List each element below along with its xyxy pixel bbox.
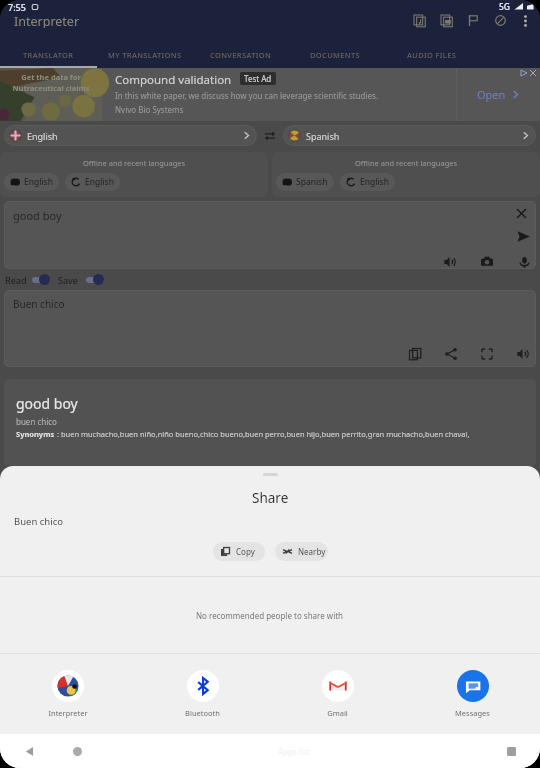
staticText: English: [360, 176, 389, 188]
staticText: Nearby: [298, 546, 326, 557]
button[interactable]: English: [340, 173, 395, 191]
staticText: Spanish: [306, 130, 340, 142]
button[interactable]: Camera: [477, 252, 497, 269]
staticText: 5G: [499, 1, 511, 13]
button[interactable]: DOCUMENTS: [288, 41, 382, 68]
staticText: No recommended people to share with: [196, 610, 344, 621]
button[interactable]: Copy: [213, 542, 265, 561]
staticText: Synonyms: [16, 429, 55, 439]
staticText: CONVERSATION: [210, 50, 272, 60]
staticText: Open: [477, 87, 506, 102]
button[interactable]: Open: [457, 68, 540, 121]
staticText: Bluetooth: [185, 708, 220, 718]
button[interactable]: Flag: [460, 13, 487, 28]
button[interactable]: Microphone: [514, 252, 534, 269]
button[interactable]: Listen: [513, 344, 533, 364]
staticText: Messages: [455, 708, 490, 718]
staticText: Get the data for Nutraceutical claims: [12, 72, 90, 93]
button[interactable]: Interpreter: [0, 670, 135, 718]
staticText: Share: [252, 489, 289, 507]
button[interactable]: Gmail: [270, 670, 405, 718]
staticText: Buen chico: [13, 297, 65, 311]
staticText: MY TRANSLATIONS: [108, 50, 182, 60]
staticText: Interpreter: [14, 13, 80, 28]
staticText: AUDIO FILES: [407, 50, 457, 60]
staticText: Compound validation: [115, 72, 232, 88]
button[interactable]: English: [4, 173, 59, 191]
button[interactable]: English: [4, 125, 257, 146]
staticText: buen chico: [16, 416, 57, 427]
staticText: English: [24, 176, 53, 188]
button[interactable]: Spanish: [283, 125, 536, 146]
staticText: good boy: [13, 208, 62, 223]
button[interactable]: MY TRANSLATIONS: [97, 41, 193, 68]
staticText: Apps list: [278, 746, 310, 757]
staticText: Copy: [236, 546, 255, 557]
button[interactable]: Send: [514, 227, 532, 245]
button[interactable]: More options: [514, 13, 536, 28]
button[interactable]: CONVERSATION: [193, 41, 288, 68]
button[interactable]: Fullscreen: [477, 344, 497, 364]
button[interactable]: Copy: [405, 344, 425, 364]
button[interactable]: Bluetooth: [135, 670, 270, 718]
button[interactable]: Recent apps: [498, 738, 524, 764]
staticText: Offline and recent languages: [83, 158, 186, 168]
staticText: Spanish: [296, 176, 328, 188]
staticText: Gmail: [327, 708, 348, 718]
staticText: Buen chico: [14, 515, 63, 528]
button[interactable]: TRANSLATOR: [0, 41, 97, 68]
staticText: TRANSLATOR: [23, 50, 74, 60]
button[interactable]: toggle: [32, 273, 50, 286]
staticText: Test Ad: [244, 73, 272, 84]
button[interactable]: toggle: [86, 273, 104, 286]
staticText: good boy: [16, 394, 78, 413]
button[interactable]: Audio file: [406, 13, 433, 28]
staticText: Read: [5, 274, 27, 286]
staticText: Save: [58, 274, 79, 286]
button[interactable]: Home: [64, 738, 90, 764]
staticText: Offline and recent languages: [355, 158, 458, 168]
staticText: 7:55: [8, 1, 26, 13]
button[interactable]: Share: [441, 344, 461, 364]
button[interactable]: Nearby: [275, 542, 328, 561]
staticText: Interpreter: [48, 708, 88, 718]
button[interactable]: Back: [16, 738, 42, 764]
button[interactable]: Block: [487, 13, 514, 28]
button[interactable]: Messages: [405, 670, 540, 718]
button[interactable]: AUDIO FILES: [382, 41, 482, 68]
staticText: English: [85, 176, 114, 188]
button[interactable]: Clear: [512, 204, 530, 222]
staticText: : buen muchacho,buen niño,niño bueno,chi…: [55, 429, 470, 439]
staticText: English: [27, 130, 58, 142]
button[interactable]: Listen: [440, 252, 460, 269]
staticText: DOCUMENTS: [310, 50, 361, 60]
button[interactable]: English: [65, 173, 120, 191]
button[interactable]: Spanish: [276, 173, 334, 191]
button[interactable]: PDF file: [433, 13, 460, 28]
staticText: In this white paper, we discuss how you …: [115, 90, 379, 101]
staticText: Nvivo Bio Systems: [115, 104, 184, 115]
